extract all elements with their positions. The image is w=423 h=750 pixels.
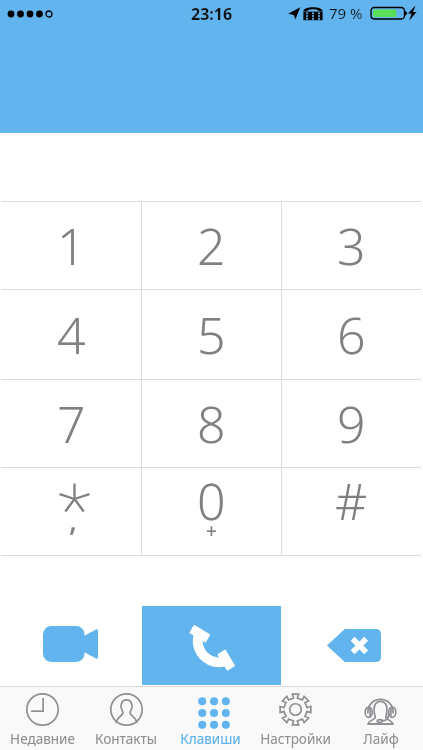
- staticText: 0: [197, 467, 226, 535]
- button[interactable]: 0: [142, 468, 281, 555]
- button[interactable]: Недавние: [0, 687, 84, 750]
- button[interactable]: Backspace: [327, 629, 381, 662]
- button[interactable]: 7: [1, 380, 141, 467]
- button[interactable]: Call: [142, 606, 281, 685]
- staticText: 5: [197, 301, 226, 369]
- staticText: Клавиши: [180, 730, 241, 748]
- staticText: 8: [197, 390, 226, 458]
- button[interactable]: Лайф: [338, 687, 423, 750]
- staticText: Недавние: [10, 730, 75, 748]
- staticText: 23:16: [191, 3, 233, 25]
- button[interactable]: 6: [282, 290, 421, 379]
- button[interactable]: ,: [1, 468, 141, 555]
- staticText: 1: [57, 212, 86, 280]
- button[interactable]: Video call: [43, 626, 98, 662]
- button[interactable]: 8: [142, 380, 281, 467]
- button[interactable]: 4: [1, 290, 141, 379]
- staticText: 79 %: [329, 3, 363, 23]
- staticText: 3: [337, 212, 366, 280]
- staticText: #: [335, 467, 368, 535]
- button[interactable]: 5: [142, 290, 281, 379]
- button[interactable]: Контакты: [84, 687, 168, 750]
- staticText: 6: [337, 301, 366, 369]
- button[interactable]: Клавиши: [168, 687, 253, 750]
- button[interactable]: 3: [282, 202, 421, 289]
- staticText: 2: [197, 212, 226, 280]
- button[interactable]: 2: [142, 202, 281, 289]
- staticText: Настройки: [260, 730, 331, 748]
- staticText: 9: [337, 390, 366, 458]
- button[interactable]: 9: [282, 380, 421, 467]
- staticText: ,: [69, 499, 78, 540]
- button[interactable]: 1: [1, 202, 141, 289]
- staticText: +: [206, 518, 217, 544]
- staticText: Контакты: [95, 730, 157, 748]
- staticText: 7: [57, 390, 86, 458]
- button[interactable]: #: [282, 468, 421, 555]
- staticText: 4: [57, 301, 86, 369]
- staticText: Лайф: [363, 730, 399, 748]
- button[interactable]: Настройки: [253, 687, 338, 750]
